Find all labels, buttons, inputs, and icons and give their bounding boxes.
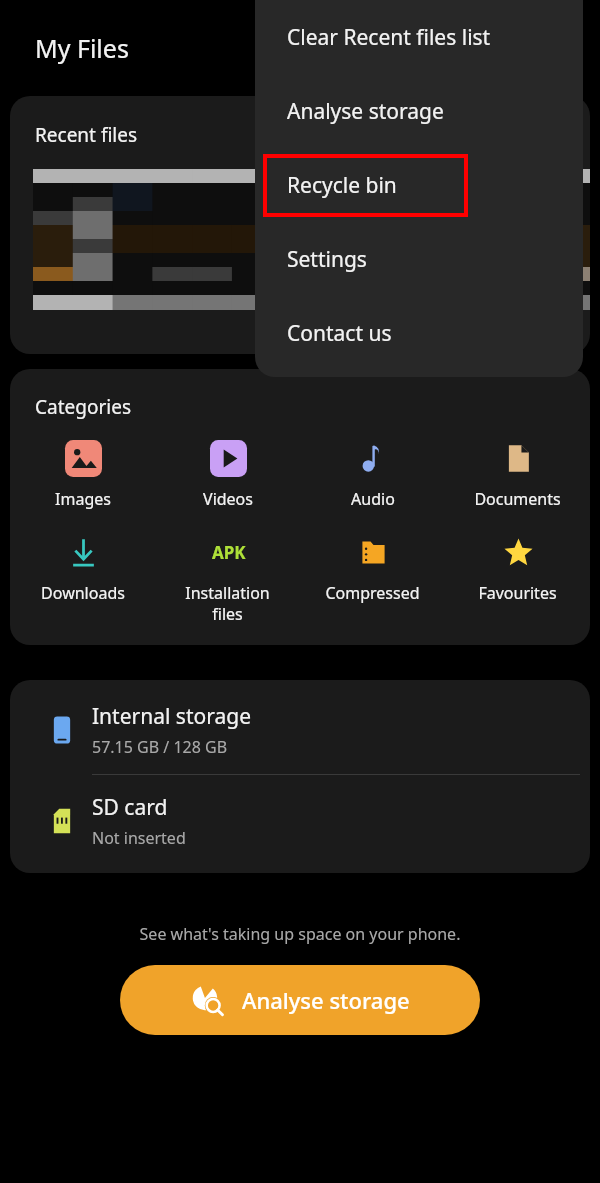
staticText: 57.15 GB / 128 GB <box>92 736 228 758</box>
staticText: Downloads <box>41 582 125 604</box>
button[interactable]: Documents <box>445 434 590 514</box>
staticText: APK <box>212 541 246 564</box>
other: Favourites <box>500 534 537 571</box>
button[interactable]: SD card <box>10 775 590 873</box>
button[interactable]: Installation files <box>155 528 300 629</box>
staticText: Analyse storage <box>242 985 410 1015</box>
staticText: Documents <box>474 488 561 510</box>
button[interactable]: Analyse storage <box>120 965 480 1035</box>
staticText: SD card <box>92 793 168 822</box>
staticText: Favourites <box>478 582 557 604</box>
other: Analyse storage <box>190 983 224 1017</box>
staticText: Compressed <box>325 582 420 604</box>
other: Downloads <box>65 534 102 571</box>
other: Documents <box>500 440 537 477</box>
staticText: Clear Recent files list <box>287 23 491 52</box>
button[interactable]: Settings <box>255 222 583 296</box>
staticText: Installation files <box>185 582 270 625</box>
staticText: Categories <box>35 394 131 420</box>
button[interactable]: Recent files <box>10 96 590 354</box>
button[interactable]: Images <box>10 434 155 514</box>
button[interactable]: Internal storage <box>10 680 590 774</box>
button[interactable]: Favourites <box>445 528 590 608</box>
staticText: Recycle bin <box>287 171 397 200</box>
staticText: See what's taking up space on your phone… <box>0 923 600 945</box>
button[interactable]: Downloads <box>10 528 155 608</box>
staticText: Not inserted <box>92 827 186 849</box>
other: Internal storage <box>45 713 79 747</box>
staticText: My Files <box>35 31 129 65</box>
button[interactable]: Contact us <box>255 296 583 370</box>
button[interactable]: Videos <box>155 434 300 514</box>
staticText: Contact us <box>287 319 392 348</box>
staticText: Images <box>55 488 111 510</box>
other: Videos <box>210 440 247 477</box>
staticText: Internal storage <box>92 702 251 731</box>
staticText: Settings <box>287 245 367 274</box>
staticText: Analyse storage <box>287 97 444 126</box>
staticText: Videos <box>203 488 253 510</box>
button[interactable]: Analyse storage <box>255 74 583 148</box>
button[interactable]: Compressed <box>300 528 445 608</box>
staticText: Audio <box>351 488 395 510</box>
button[interactable]: Clear Recent files list <box>255 0 583 74</box>
other: SD card <box>45 804 79 838</box>
other: Installation files <box>210 534 247 571</box>
other: Compressed <box>355 534 392 571</box>
staticText: Recent files <box>35 122 138 148</box>
other: Audio <box>355 440 392 477</box>
button[interactable]: Recycle bin <box>263 148 575 222</box>
button[interactable]: Audio <box>300 434 445 514</box>
other: Images <box>65 440 102 477</box>
